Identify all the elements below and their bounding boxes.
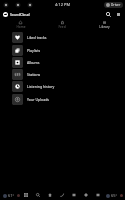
button[interactable]: Your Uploads (0, 94, 125, 105)
button[interactable]: Search (104, 10, 113, 19)
staticText: Stations (27, 72, 41, 77)
button[interactable]: Files (68, 190, 80, 200)
staticText: 61° (8, 193, 15, 198)
button[interactable]: More options (114, 10, 123, 19)
button[interactable]: Playlists (0, 45, 125, 56)
staticText: Your Uploads (27, 97, 49, 102)
button[interactable]: Albums (0, 57, 125, 68)
button[interactable]: Search (32, 190, 44, 200)
button[interactable]: Start (20, 190, 32, 200)
button[interactable]: Home (44, 190, 56, 200)
staticText: Playlists (27, 48, 41, 53)
button[interactable]: Listening history (0, 81, 125, 92)
button[interactable]: App (92, 190, 104, 200)
button[interactable]: Edge (56, 190, 68, 200)
button[interactable]: Feed (41, 20, 83, 30)
button[interactable]: Stations (0, 69, 125, 80)
staticText: Driver (111, 3, 121, 7)
staticText: Home (16, 25, 26, 29)
staticText: Library (99, 25, 110, 29)
button[interactable]: Driver (104, 2, 123, 8)
staticText: Listening history (27, 84, 55, 89)
button[interactable]: Store (80, 190, 92, 200)
button[interactable]: Library (83, 20, 125, 30)
staticText: 4:12 PM (55, 2, 71, 7)
staticText: Liked tracks (27, 35, 47, 40)
staticText: Feed (58, 25, 66, 29)
staticText: SoundCloud (10, 12, 30, 17)
staticText: Albums (27, 60, 40, 65)
button[interactable]: Home (0, 20, 41, 30)
staticText: 65° (111, 193, 118, 198)
button[interactable]: Liked tracks (0, 32, 125, 43)
